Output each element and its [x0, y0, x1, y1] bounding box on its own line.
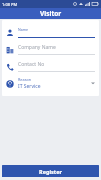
staticText: Contact No [18, 61, 45, 68]
other: Expand reason dropdown [90, 80, 96, 86]
staticText: 1:08 PM [2, 2, 18, 7]
staticText: Register [39, 168, 62, 175]
button[interactable]: Reason [2, 75, 99, 91]
staticText: Company Name [18, 44, 56, 51]
button[interactable]: Register [2, 165, 99, 177]
other: Name [5, 28, 14, 37]
other: Company Name [5, 45, 14, 54]
staticText: Visitor [40, 9, 62, 18]
staticText: Name [18, 27, 29, 32]
other: Contact No [5, 62, 14, 71]
button[interactable]: Company Name [2, 41, 99, 58]
staticText: Reason [18, 77, 32, 82]
staticText: IT Service [18, 83, 41, 90]
other: Reason [5, 79, 14, 88]
button[interactable]: Name [2, 24, 99, 41]
button[interactable]: Contact No [2, 58, 99, 75]
